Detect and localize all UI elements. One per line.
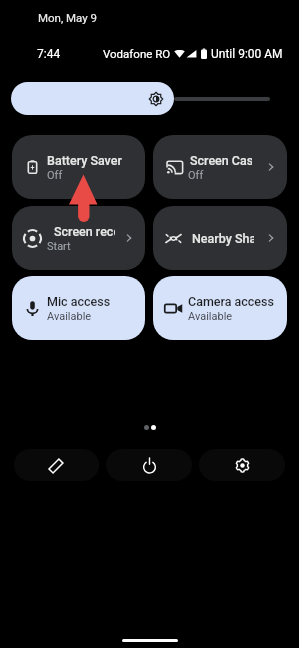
staticText: Vodafone RO [103, 47, 171, 60]
button[interactable]: Settings [199, 449, 285, 481]
staticText: Available [47, 310, 92, 323]
staticText: Nearby Share [192, 231, 254, 246]
button[interactable] [11, 82, 174, 115]
staticText: Battery Saver [47, 153, 122, 168]
button[interactable]: Screen Cast [153, 135, 287, 199]
staticText: Camera access [188, 294, 274, 309]
staticText: Start [47, 240, 71, 253]
staticText: Off [188, 169, 204, 182]
staticText: Mon, May 9 [38, 11, 98, 24]
staticText: 7:44 [37, 47, 61, 61]
button[interactable]: Mic access [12, 276, 145, 340]
button[interactable]: Camera access [153, 276, 287, 340]
button[interactable]: Power [106, 449, 192, 481]
staticText: Available [188, 310, 233, 323]
button[interactable]: Battery Saver [12, 135, 145, 199]
button[interactable]: Screen record [12, 206, 145, 270]
button[interactable]: Edit tiles [14, 449, 99, 481]
staticText: Off [47, 169, 63, 182]
staticText: Screen record [54, 224, 115, 239]
button[interactable]: Nearby Share [153, 206, 287, 270]
staticText: Screen Cast [190, 153, 252, 168]
staticText: Mic access [47, 294, 111, 309]
staticText: Until 9:00 AM [211, 47, 283, 61]
